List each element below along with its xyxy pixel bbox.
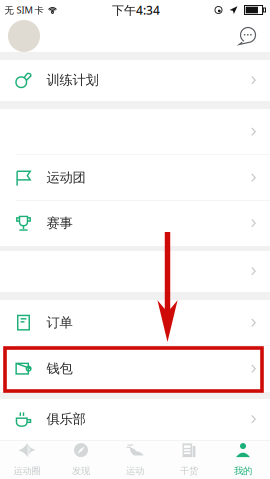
button[interactable]: 训练计划: [0, 60, 270, 101]
button[interactable]: 干货: [162, 440, 216, 479]
button[interactable]: 运动团: [0, 155, 270, 201]
staticText: 下午4:34: [112, 2, 160, 18]
staticText: 运动团: [46, 169, 85, 186]
button[interactable]: Messages: [234, 23, 260, 49]
button[interactable]: 订单: [0, 300, 270, 346]
button[interactable]: 钱包: [0, 346, 270, 392]
button[interactable]: 运动圈: [0, 440, 54, 479]
button[interactable]: Profile photo: [8, 20, 40, 52]
staticText: 我的: [234, 465, 252, 477]
staticText: 发现: [72, 465, 90, 477]
staticText: 俱乐部: [46, 411, 85, 427]
staticText: 训练计划: [46, 72, 98, 88]
staticText: 钱包: [46, 360, 72, 377]
staticText: 干货: [180, 465, 198, 477]
staticText: 运动: [126, 465, 144, 477]
staticText: 订单: [46, 314, 72, 331]
button[interactable]: 发现: [54, 440, 108, 479]
button[interactable]: 赛事: [0, 201, 270, 246]
staticText: 无 SIM 卡: [4, 4, 43, 16]
button[interactable]: [0, 251, 270, 292]
button[interactable]: 我的: [216, 440, 270, 479]
button[interactable]: 俱乐部: [0, 399, 270, 440]
button[interactable]: 运动: [108, 440, 162, 479]
staticText: 赛事: [46, 215, 72, 231]
staticText: 运动圈: [13, 465, 40, 477]
